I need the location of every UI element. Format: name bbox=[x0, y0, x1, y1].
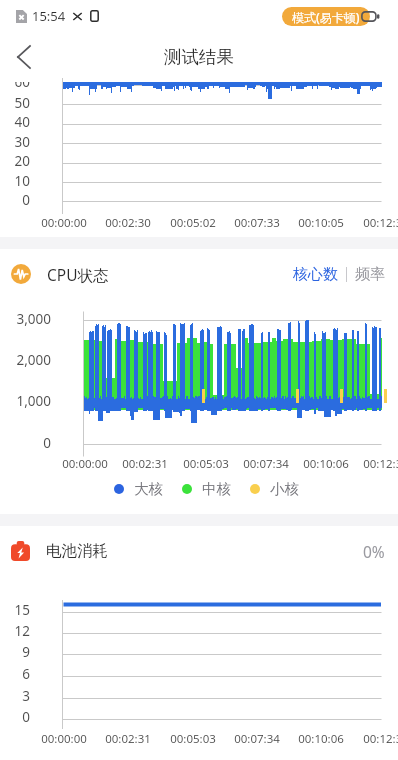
staticText: 00:07:34 bbox=[221, 456, 311, 472]
staticText: 20 bbox=[0, 152, 30, 170]
staticText: 00:12:36 bbox=[341, 456, 398, 472]
button[interactable]: 中核 bbox=[182, 480, 231, 498]
staticText: 00:00:00 bbox=[40, 456, 130, 472]
staticText: 6 bbox=[0, 665, 30, 683]
staticText: 12 bbox=[0, 622, 30, 640]
staticText: 0% bbox=[363, 541, 385, 562]
staticText: 2,000 bbox=[0, 351, 51, 369]
other: Battery bbox=[361, 11, 380, 22]
staticText: 00:07:34 bbox=[212, 731, 302, 747]
staticText: 0 bbox=[0, 708, 30, 726]
staticText: 小核 bbox=[270, 480, 299, 498]
staticText: 1,000 bbox=[0, 392, 51, 410]
staticText: 3,000 bbox=[0, 310, 51, 328]
staticText: 15:54 bbox=[32, 7, 66, 25]
staticText: 00:07:33 bbox=[212, 215, 302, 231]
staticText: 大核 bbox=[134, 480, 163, 498]
staticText: 10 bbox=[0, 172, 30, 190]
staticText: 00:02:31 bbox=[100, 456, 190, 472]
button[interactable]: 核心数 bbox=[293, 259, 338, 290]
button[interactable]: 频率 bbox=[355, 259, 385, 290]
staticText: 频率 bbox=[355, 265, 385, 284]
staticText: 50 bbox=[0, 94, 30, 112]
staticText: 3 bbox=[0, 687, 30, 705]
staticText: 00:10:05 bbox=[276, 215, 366, 231]
staticText: 00:05:02 bbox=[148, 215, 238, 231]
staticText: 00:00:00 bbox=[19, 215, 109, 231]
staticText: 40 bbox=[0, 113, 30, 131]
staticText: 00:10:06 bbox=[276, 731, 366, 747]
staticText: 00:02:31 bbox=[83, 731, 173, 747]
staticText: 测试结果 bbox=[164, 46, 234, 68]
staticText: 30 bbox=[0, 133, 30, 151]
staticText: 00:12:36 bbox=[341, 731, 398, 747]
button[interactable]: Back bbox=[2, 37, 44, 77]
button[interactable]: 小核 bbox=[250, 480, 299, 498]
staticText: 00:05:03 bbox=[161, 456, 251, 472]
button[interactable]: 模式(易卡顿) bbox=[282, 7, 370, 26]
staticText: 模式(易卡顿) bbox=[292, 9, 360, 25]
staticText: 0 bbox=[0, 191, 30, 209]
staticText: 00:05:03 bbox=[148, 731, 238, 747]
staticText: 0 bbox=[0, 434, 51, 452]
staticText: 00:12:35 bbox=[341, 215, 398, 231]
button[interactable]: 大核 bbox=[114, 480, 163, 498]
staticText: 00:00:00 bbox=[19, 731, 109, 747]
staticText: 15 bbox=[0, 601, 30, 619]
staticText: 中核 bbox=[202, 480, 231, 498]
staticText: CPU状态 bbox=[47, 264, 109, 285]
staticText: 核心数 bbox=[293, 265, 338, 284]
staticText: 9 bbox=[0, 643, 30, 661]
staticText: 60 bbox=[0, 73, 30, 91]
staticText: 00:10:06 bbox=[281, 456, 371, 472]
staticText: 00:02:30 bbox=[83, 215, 173, 231]
staticText: 电池消耗 bbox=[46, 541, 108, 561]
